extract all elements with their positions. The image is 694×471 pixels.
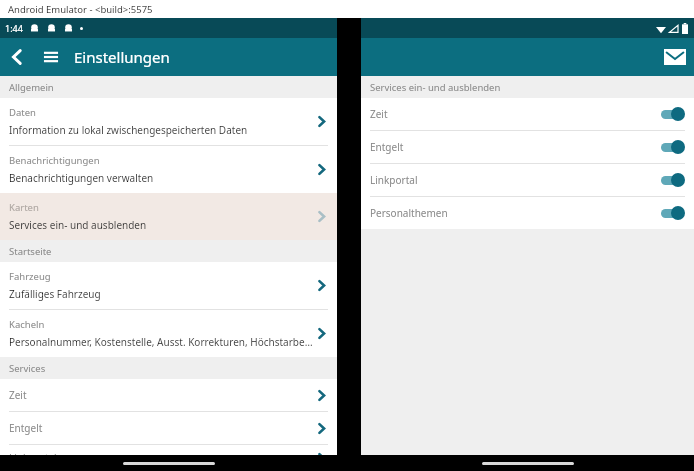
staticText: Benachrichtigungen verwalten (9, 171, 154, 185)
button[interactable]: Back (0, 40, 34, 74)
staticText: Entgelt (9, 421, 315, 435)
staticText: Karten (9, 201, 39, 214)
button[interactable]: Entgelt (361, 131, 694, 163)
staticText: 1:44 (5, 22, 23, 34)
staticText: Kacheln (9, 318, 45, 331)
staticText: Personalthemen (370, 206, 659, 220)
button[interactable]: Benachrichtigungen (0, 146, 337, 193)
button[interactable]: Personalthemen (361, 197, 694, 229)
staticText: Services ein- und ausblenden (9, 218, 147, 232)
staticText: Services ein- und ausblenden (370, 81, 501, 94)
staticText: Entgelt (370, 140, 659, 154)
button[interactable]: Linkportal (0, 445, 337, 471)
button[interactable]: Daten (0, 98, 337, 145)
staticText: Zeit (370, 107, 659, 121)
button[interactable]: Messages (656, 38, 694, 76)
staticText: Startseite (9, 245, 52, 258)
button[interactable]: Zeit (0, 379, 337, 411)
staticText: Allgemein (9, 81, 54, 94)
staticText: Android Emulator - <build>:5575 (8, 3, 153, 16)
staticText: Linkportal (370, 173, 659, 187)
staticText: Services (9, 362, 46, 375)
staticText: Personalnummer, Kostenstelle, Ausst. Kor… (9, 335, 315, 349)
staticText: Information zu lokal zwischengespeichert… (9, 123, 248, 137)
button[interactable]: Kacheln (0, 310, 337, 357)
button[interactable]: Entgelt (0, 412, 337, 444)
button[interactable]: Zeit (361, 98, 694, 130)
staticText: Zufälliges Fahrzeug (9, 287, 101, 301)
staticText: Linkportal (9, 451, 315, 465)
staticText: Benachrichtigungen (9, 154, 100, 167)
staticText: Einstellungen (74, 47, 170, 67)
staticText: Fahrzeug (9, 270, 51, 283)
staticText: Daten (9, 106, 36, 119)
button[interactable]: Menu (34, 40, 68, 74)
button[interactable]: Karten (0, 193, 337, 240)
button[interactable]: Fahrzeug (0, 262, 337, 309)
button[interactable]: Linkportal (361, 164, 694, 196)
staticText: Zeit (9, 388, 315, 402)
